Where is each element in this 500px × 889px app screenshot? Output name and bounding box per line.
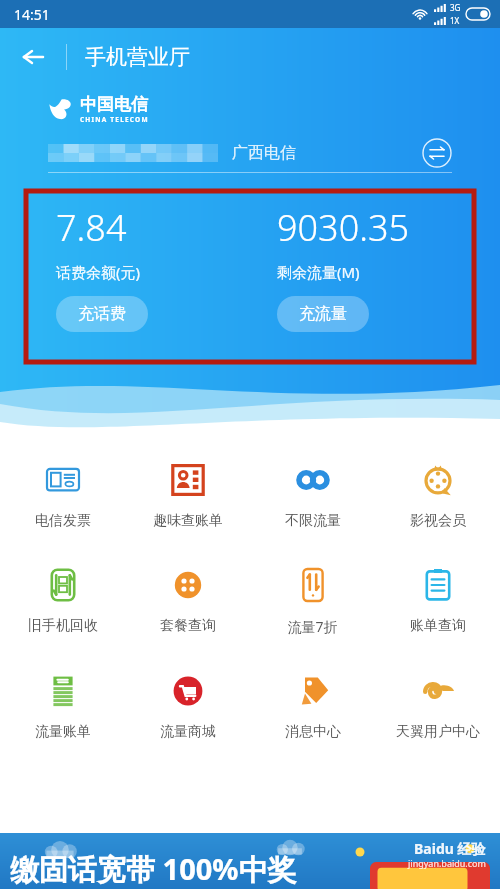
button[interactable]: 旧手机回收 xyxy=(0,555,125,645)
staticText: 电信发票 xyxy=(35,512,91,530)
staticText: 14:51 xyxy=(14,5,50,24)
staticText: 流量账单 xyxy=(35,723,91,741)
staticText: 流量商城 xyxy=(160,723,216,741)
button[interactable]: Back xyxy=(0,28,66,86)
staticText: 账单查询 xyxy=(410,617,466,635)
staticText: 不限流量 xyxy=(285,512,341,530)
button[interactable]: 消息中心 xyxy=(250,661,375,751)
staticText: 影视会员 xyxy=(410,512,466,530)
staticText: Baidu 经验 xyxy=(414,839,486,858)
staticText: 充话费 xyxy=(78,304,126,324)
staticText: 套餐查询 xyxy=(160,617,216,635)
button[interactable]: 趣味查账单 xyxy=(125,450,250,540)
button[interactable]: 充流量 xyxy=(277,296,369,332)
staticText: 趣味查账单 xyxy=(153,512,223,530)
button[interactable]: 流量账单 xyxy=(0,661,125,751)
button[interactable]: 流量7折 xyxy=(250,555,375,646)
button[interactable]: Promotion banner xyxy=(0,833,500,889)
staticText: 天翼用户中心 xyxy=(396,723,480,741)
staticText: 流量7折 xyxy=(287,617,338,636)
button[interactable]: 账单查询 xyxy=(375,555,500,645)
staticText: 广西电信 xyxy=(232,143,296,163)
staticText: 中国电信 xyxy=(80,94,148,115)
staticText: 手机营业厅 xyxy=(85,44,190,70)
staticText: 话费余额(元) xyxy=(56,262,141,282)
staticText: 剩余流量(M) xyxy=(277,262,360,282)
staticText: jingyan.baidu.com xyxy=(408,857,486,869)
button[interactable]: 流量商城 xyxy=(125,661,250,751)
staticText: 9030.35 xyxy=(277,203,410,252)
button[interactable]: 电信发票 xyxy=(0,450,125,540)
staticText: 充流量 xyxy=(299,304,347,324)
button[interactable]: 充话费 xyxy=(56,296,148,332)
staticText: 3G xyxy=(450,2,461,13)
staticText: 缴固话宽带 100%中奖 xyxy=(10,849,297,889)
staticText: 7.84 xyxy=(56,203,127,252)
button[interactable]: 影视会员 xyxy=(375,450,500,540)
button[interactable]: 不限流量 xyxy=(250,450,375,540)
button[interactable]: 套餐查询 xyxy=(125,555,250,645)
staticText: 旧手机回收 xyxy=(28,617,98,635)
staticText: CHINA TELECOM xyxy=(80,115,149,124)
staticText: 消息中心 xyxy=(285,723,341,741)
staticText: 1X xyxy=(450,15,460,26)
button[interactable]: Switch account xyxy=(422,138,452,168)
button[interactable]: 天翼用户中心 xyxy=(375,661,500,751)
